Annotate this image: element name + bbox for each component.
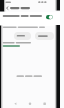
button[interactable] (41, 100, 48, 107)
button[interactable] (5, 5, 10, 10)
button[interactable] (45, 14, 54, 20)
button[interactable] (27, 100, 34, 107)
button[interactable] (0, 12, 60, 26)
button[interactable] (35, 32, 54, 40)
button[interactable] (14, 32, 31, 40)
button[interactable] (2, 44, 21, 48)
button[interactable] (12, 100, 19, 107)
